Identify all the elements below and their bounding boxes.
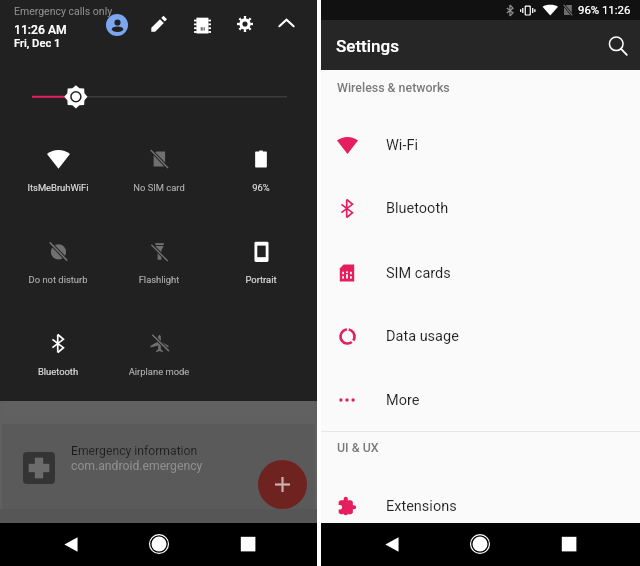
button[interactable] — [4, 396, 313, 416]
button[interactable]: Settings — [237, 16, 253, 32]
staticText: Data usage — [386, 328, 459, 345]
button[interactable]: SIM cards — [321, 241, 640, 305]
staticText: 96% 11:26 — [578, 3, 631, 16]
staticText: com.android.emergency — [71, 459, 203, 473]
staticText: Emergency information — [71, 444, 198, 458]
staticText: Do not disturb — [8, 274, 108, 285]
staticText: No SIM card — [109, 182, 209, 193]
button[interactable]: Home — [148, 533, 170, 555]
staticText: Wi-Fi — [386, 137, 418, 154]
button[interactable]: Wi-Fi — [321, 113, 640, 177]
button[interactable]: User account — [106, 14, 128, 36]
button[interactable]: Data usage — [321, 304, 640, 368]
button[interactable]: Bluetooth — [321, 176, 640, 240]
button[interactable]: Recent apps — [559, 534, 579, 554]
staticText: Bluetooth — [386, 200, 449, 217]
button[interactable]: No SIM card — [109, 135, 209, 195]
staticText: ItsMeBruhWiFi — [8, 182, 108, 193]
button[interactable] — [0, 84, 317, 110]
button[interactable]: Airplane mode — [109, 319, 209, 379]
staticText: More — [386, 392, 420, 409]
staticText: Bluetooth — [8, 366, 108, 377]
button[interactable]: Portrait — [211, 227, 311, 287]
button[interactable]: Back — [382, 534, 403, 555]
staticText: Fri, Dec 1 — [14, 37, 61, 50]
button[interactable]: More — [321, 368, 640, 432]
button[interactable]: Edit — [151, 16, 167, 32]
staticText: Wireless & networks — [337, 80, 450, 95]
button[interactable]: Back — [61, 534, 82, 555]
button[interactable]: Emergency information — [2, 424, 315, 509]
staticText: Emergency calls only — [14, 5, 113, 17]
staticText: 96% — [211, 182, 311, 193]
staticText: Flashlight — [109, 274, 209, 285]
button[interactable]: Add — [258, 460, 307, 509]
button[interactable]: Developer options — [194, 17, 211, 34]
button[interactable]: ItsMeBruhWiFi — [8, 135, 108, 195]
staticText: Extensions — [386, 498, 457, 515]
button[interactable]: Bluetooth — [8, 319, 108, 379]
staticText: 11:26 AM — [14, 23, 67, 37]
staticText: UI & UX — [337, 440, 379, 455]
button[interactable]: Home — [469, 533, 491, 555]
button[interactable]: Extensions — [321, 474, 640, 538]
button[interactable]: Collapse — [278, 16, 295, 33]
staticText: Airplane mode — [109, 366, 209, 377]
staticText: Portrait — [211, 274, 311, 285]
staticText: Settings — [336, 36, 399, 56]
button[interactable]: Do not disturb — [8, 227, 108, 287]
button[interactable]: Recent apps — [238, 534, 258, 554]
button[interactable]: 96% — [211, 135, 311, 195]
staticText: SIM cards — [386, 265, 451, 282]
button[interactable]: Search — [607, 35, 629, 57]
button[interactable]: Flashlight — [109, 227, 209, 287]
